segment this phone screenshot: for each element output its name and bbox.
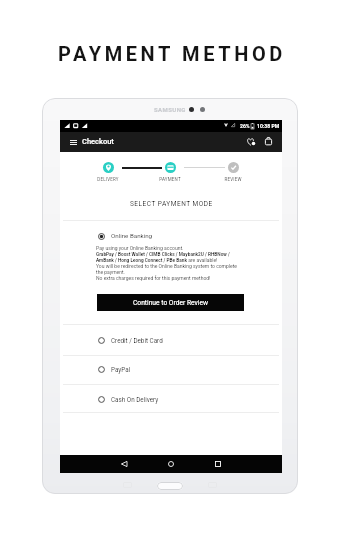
button[interactable]: Open navigation menu xyxy=(67,136,80,148)
staticText: 10:38 PM xyxy=(257,123,280,129)
staticText: REVIEW xyxy=(224,177,242,182)
staticText: DELIVERY xyxy=(97,177,119,182)
button[interactable]: PayPal xyxy=(60,355,282,385)
button[interactable]: Cash On Delivery xyxy=(60,385,282,415)
staticText: Checkout xyxy=(82,137,114,146)
button[interactable]: Continue to Order Review xyxy=(97,294,244,311)
button[interactable]: PAYMENT xyxy=(148,162,192,184)
staticText: SAMSUNG xyxy=(154,106,186,113)
staticText: PAYMENT METHOD xyxy=(2,42,340,65)
button[interactable]: Credit / Debit Card xyxy=(60,326,282,356)
button[interactable]: Back xyxy=(118,458,130,470)
staticText: Online Banking xyxy=(111,232,153,239)
staticText: Credit / Debit Card xyxy=(111,337,163,344)
staticText: Pay using your Online Banking account. G… xyxy=(96,245,256,281)
staticText: PAYMENT xyxy=(159,177,181,182)
button[interactable]: DELIVERY xyxy=(86,162,130,184)
staticText: PayPal xyxy=(111,366,131,373)
button[interactable]: Shopping bag xyxy=(264,136,273,149)
button[interactable]: Online Banking xyxy=(60,221,282,326)
button[interactable]: Recent apps xyxy=(212,458,224,470)
staticText: 26% xyxy=(240,123,250,129)
button[interactable]: REVIEW xyxy=(211,162,255,184)
staticText: Cash On Delivery xyxy=(111,396,159,403)
staticText: Continue to Order Review xyxy=(133,299,208,307)
staticText: SELECT PAYMENT MODE xyxy=(130,200,213,208)
button[interactable]: Home xyxy=(165,458,177,470)
button[interactable]: Home key xyxy=(157,482,183,490)
button[interactable]: Wishlist xyxy=(246,136,257,149)
